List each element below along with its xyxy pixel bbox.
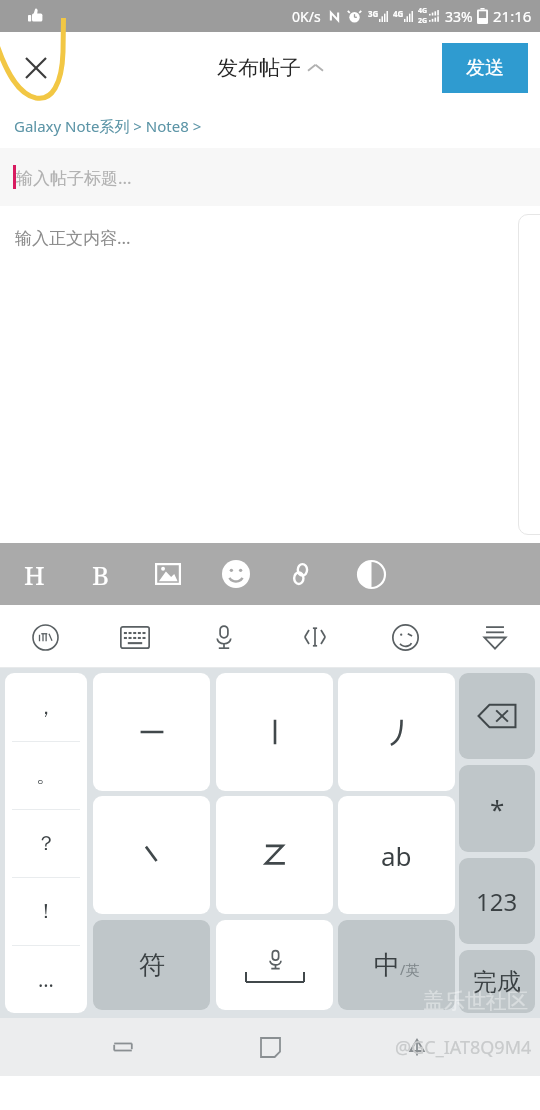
button[interactable]: 发布帖子	[217, 55, 323, 81]
button[interactable]: 输入帖子标题...	[0, 148, 540, 206]
button[interactable]: 表情	[378, 610, 432, 664]
button[interactable]: ，	[5, 673, 87, 741]
staticText: H	[24, 557, 45, 592]
button[interactable]: Galaxy Note系列 > Note8 >	[0, 104, 540, 148]
button[interactable]: 输入法	[18, 610, 72, 664]
button[interactable]: 删除	[459, 673, 535, 759]
button[interactable]: 光标移动	[288, 610, 342, 664]
button[interactable]: 中	[338, 920, 455, 1010]
staticText: 发送	[466, 56, 504, 80]
staticText: /英	[400, 960, 420, 979]
staticText: 4G	[393, 8, 404, 19]
staticText: 输入正文内容...	[15, 226, 131, 249]
button[interactable]: 语音输入	[197, 610, 251, 664]
staticText: ，	[36, 695, 56, 720]
staticText: @GC_IAT8Q9M4	[395, 1035, 532, 1060]
staticText: 4G	[418, 6, 428, 16]
button[interactable]: 主页	[244, 1021, 296, 1073]
staticText: 123	[476, 885, 518, 918]
staticText: ab	[381, 838, 412, 873]
staticText: *	[490, 791, 505, 826]
button[interactable]	[338, 673, 455, 791]
staticText: …	[38, 966, 54, 993]
button[interactable]: ？	[5, 810, 87, 877]
button[interactable]: 最近任务	[97, 1021, 149, 1073]
button[interactable]: 加粗	[77, 550, 125, 598]
button[interactable]: 符	[93, 920, 210, 1010]
button[interactable]: 表情	[212, 550, 260, 598]
button[interactable]: 发送	[442, 43, 528, 93]
button[interactable]: 链接	[279, 550, 327, 598]
button[interactable]: 完成	[459, 950, 535, 1013]
button[interactable]: …	[5, 946, 87, 1013]
staticText: 输入帖子标题...	[16, 166, 132, 189]
button[interactable]: 图片	[144, 550, 192, 598]
staticText: 中	[374, 949, 400, 982]
button[interactable]	[216, 673, 333, 791]
button[interactable]: 数字键盘	[459, 858, 535, 944]
button[interactable]	[216, 920, 333, 1010]
staticText: ！	[36, 899, 56, 924]
staticText: 完成	[473, 967, 521, 997]
button[interactable]	[93, 673, 210, 791]
button[interactable]: 收起键盘	[468, 610, 522, 664]
button[interactable]: 对比度	[347, 550, 395, 598]
button[interactable]: 键盘	[108, 610, 162, 664]
staticText: Galaxy Note系列 > Note8 >	[14, 116, 202, 136]
staticText: 0K/s	[292, 7, 321, 26]
button[interactable]	[216, 796, 333, 914]
staticText: 21:16	[493, 6, 532, 26]
staticText: ？	[36, 831, 56, 856]
button[interactable]: 返回	[391, 1021, 443, 1073]
staticText: 2G	[418, 16, 428, 26]
button[interactable]: 关闭	[14, 46, 58, 90]
button[interactable]: 星号	[459, 765, 535, 852]
staticText: 盖乐世社区	[423, 988, 528, 1014]
button[interactable]: ab	[338, 796, 455, 914]
button[interactable]: 输入正文内容...	[0, 206, 540, 543]
button[interactable]: 标题	[10, 550, 58, 598]
button[interactable]: 。	[5, 742, 87, 809]
staticText: 3G	[368, 8, 379, 19]
button[interactable]: ！	[5, 878, 87, 945]
staticText: B	[92, 557, 110, 592]
staticText: 发布帖子	[217, 55, 301, 81]
staticText: 。	[36, 763, 56, 788]
staticText: 符	[139, 949, 165, 982]
staticText: 33%	[445, 7, 473, 26]
button[interactable]	[93, 796, 210, 914]
